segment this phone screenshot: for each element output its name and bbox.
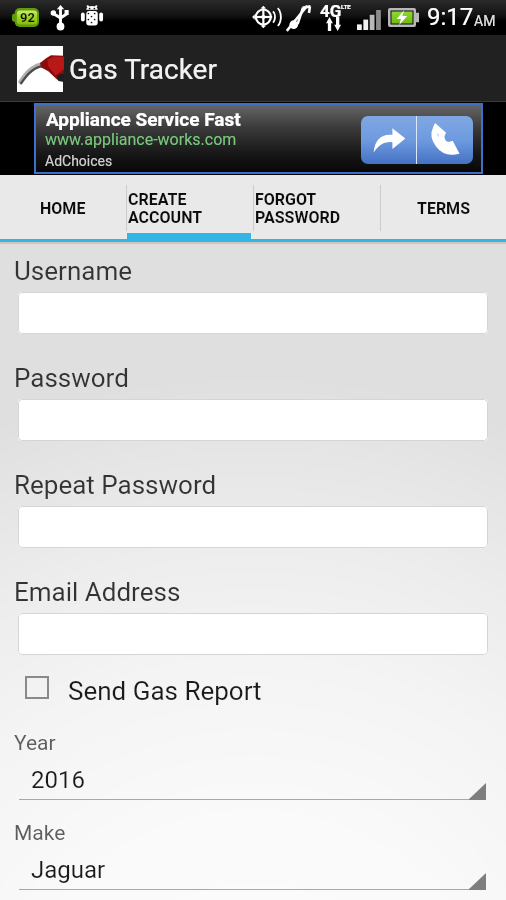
button[interactable]: CREATE ACCOUNT	[126, 175, 253, 233]
button[interactable]: TERMS	[380, 175, 506, 233]
staticText: HOME	[40, 199, 86, 218]
staticText: Password	[14, 363, 129, 393]
staticText: Jaguar	[31, 856, 106, 884]
button[interactable]: HOME	[0, 175, 126, 233]
staticText: Appliance Service Fast	[46, 108, 241, 130]
staticText: Year	[14, 731, 56, 756]
staticText: FORGOT PASSWORD	[255, 190, 341, 227]
button[interactable]	[18, 399, 488, 441]
staticText: Make	[14, 821, 66, 846]
button[interactable]: Year	[0, 733, 506, 801]
staticText: AM	[474, 13, 496, 29]
button[interactable]: Navigate and call advertiser	[361, 116, 473, 164]
staticText: TERMS	[417, 199, 470, 218]
staticText: 9:17	[427, 3, 474, 31]
staticText: CREATE ACCOUNT	[128, 190, 203, 227]
staticText: Repeat Password	[14, 470, 217, 500]
staticText: 4G	[320, 1, 342, 21]
button[interactable]: Appliance Service Fast	[34, 103, 483, 174]
button[interactable]: Gas Tracker app icon	[17, 46, 63, 92]
staticText: 92	[20, 10, 35, 25]
button[interactable]	[18, 292, 488, 334]
button[interactable]: Send Gas Report	[25, 670, 262, 704]
button[interactable]: FORGOT PASSWORD	[253, 175, 380, 233]
staticText: Gas Tracker	[69, 53, 217, 86]
button[interactable]	[18, 506, 488, 548]
staticText: AdChoices	[45, 153, 113, 169]
staticText: Username	[14, 256, 132, 286]
button[interactable]: Make	[0, 823, 506, 891]
staticText: www.appliance-works.com	[45, 130, 237, 149]
button[interactable]	[18, 613, 488, 655]
staticText: Send Gas Report	[68, 676, 262, 706]
staticText: Email Address	[14, 577, 181, 607]
staticText: LTE	[341, 3, 351, 10]
staticText: 2016	[31, 766, 85, 794]
